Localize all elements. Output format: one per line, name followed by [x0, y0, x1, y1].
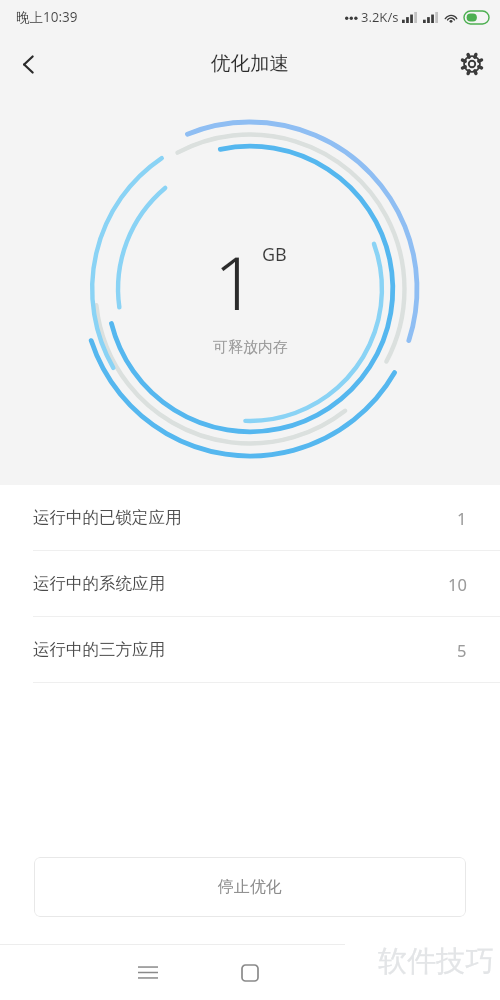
- button[interactable]: Back: [0, 36, 56, 92]
- button[interactable]: Settings: [444, 36, 500, 92]
- staticText: 晚上10:39: [16, 8, 78, 26]
- staticText: 1: [214, 231, 257, 332]
- button[interactable]: Recent apps: [118, 945, 178, 1000]
- staticText: 停止优化: [218, 877, 282, 897]
- staticText: 运行中的三方应用: [33, 639, 457, 660]
- staticText: 软件技巧: [378, 943, 494, 980]
- staticText: 运行中的已锁定应用: [33, 507, 457, 528]
- button[interactable]: 停止优化: [34, 857, 466, 917]
- staticText: 5: [457, 639, 467, 661]
- staticText: 可释放内存: [213, 338, 288, 357]
- staticText: 3.2K/s: [361, 8, 399, 26]
- staticText: 1: [457, 507, 467, 529]
- button[interactable]: 运行中的已锁定应用: [0, 485, 500, 551]
- button[interactable]: 运行中的三方应用: [0, 617, 500, 683]
- staticText: 运行中的系统应用: [33, 573, 448, 594]
- staticText: 10: [448, 573, 467, 595]
- staticText: GB: [262, 242, 287, 267]
- button[interactable]: Home: [220, 945, 280, 1000]
- staticText: 优化加速: [211, 51, 289, 76]
- button[interactable]: 运行中的系统应用: [0, 551, 500, 617]
